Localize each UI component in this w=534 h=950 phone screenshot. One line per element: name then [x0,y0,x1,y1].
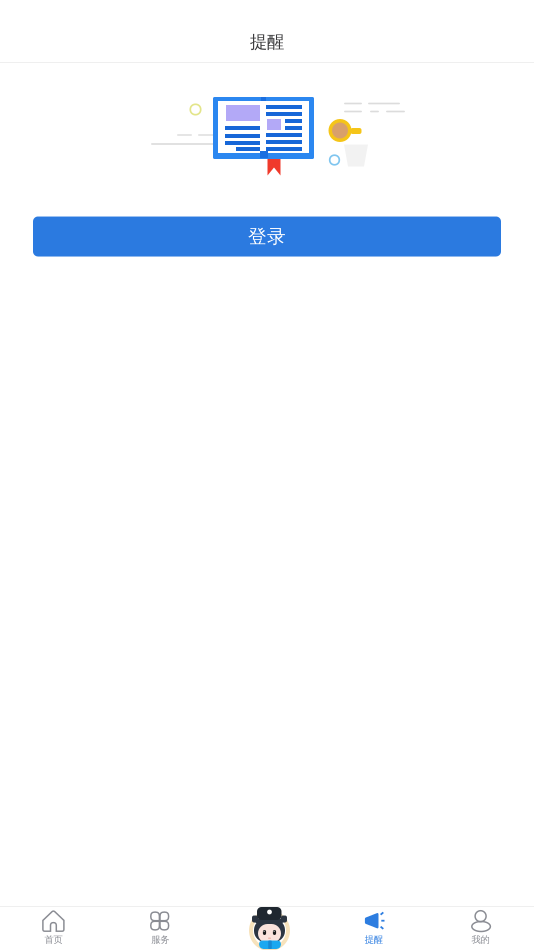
staticText: 提醒 [250,31,284,53]
staticText: 登录 [248,225,286,248]
button[interactable]: 首页 [0,907,107,950]
button[interactable]: 我的 [427,907,534,950]
button[interactable]: 提醒 [320,907,427,950]
button[interactable]: 登录 [33,216,501,256]
staticText: 提醒 [365,934,383,945]
staticText: 首页 [44,934,62,945]
button[interactable]: 服务中心 [239,907,295,950]
staticText: 服务 [151,934,169,945]
staticText: 我的 [472,934,490,945]
button[interactable]: 服务 [107,907,214,950]
